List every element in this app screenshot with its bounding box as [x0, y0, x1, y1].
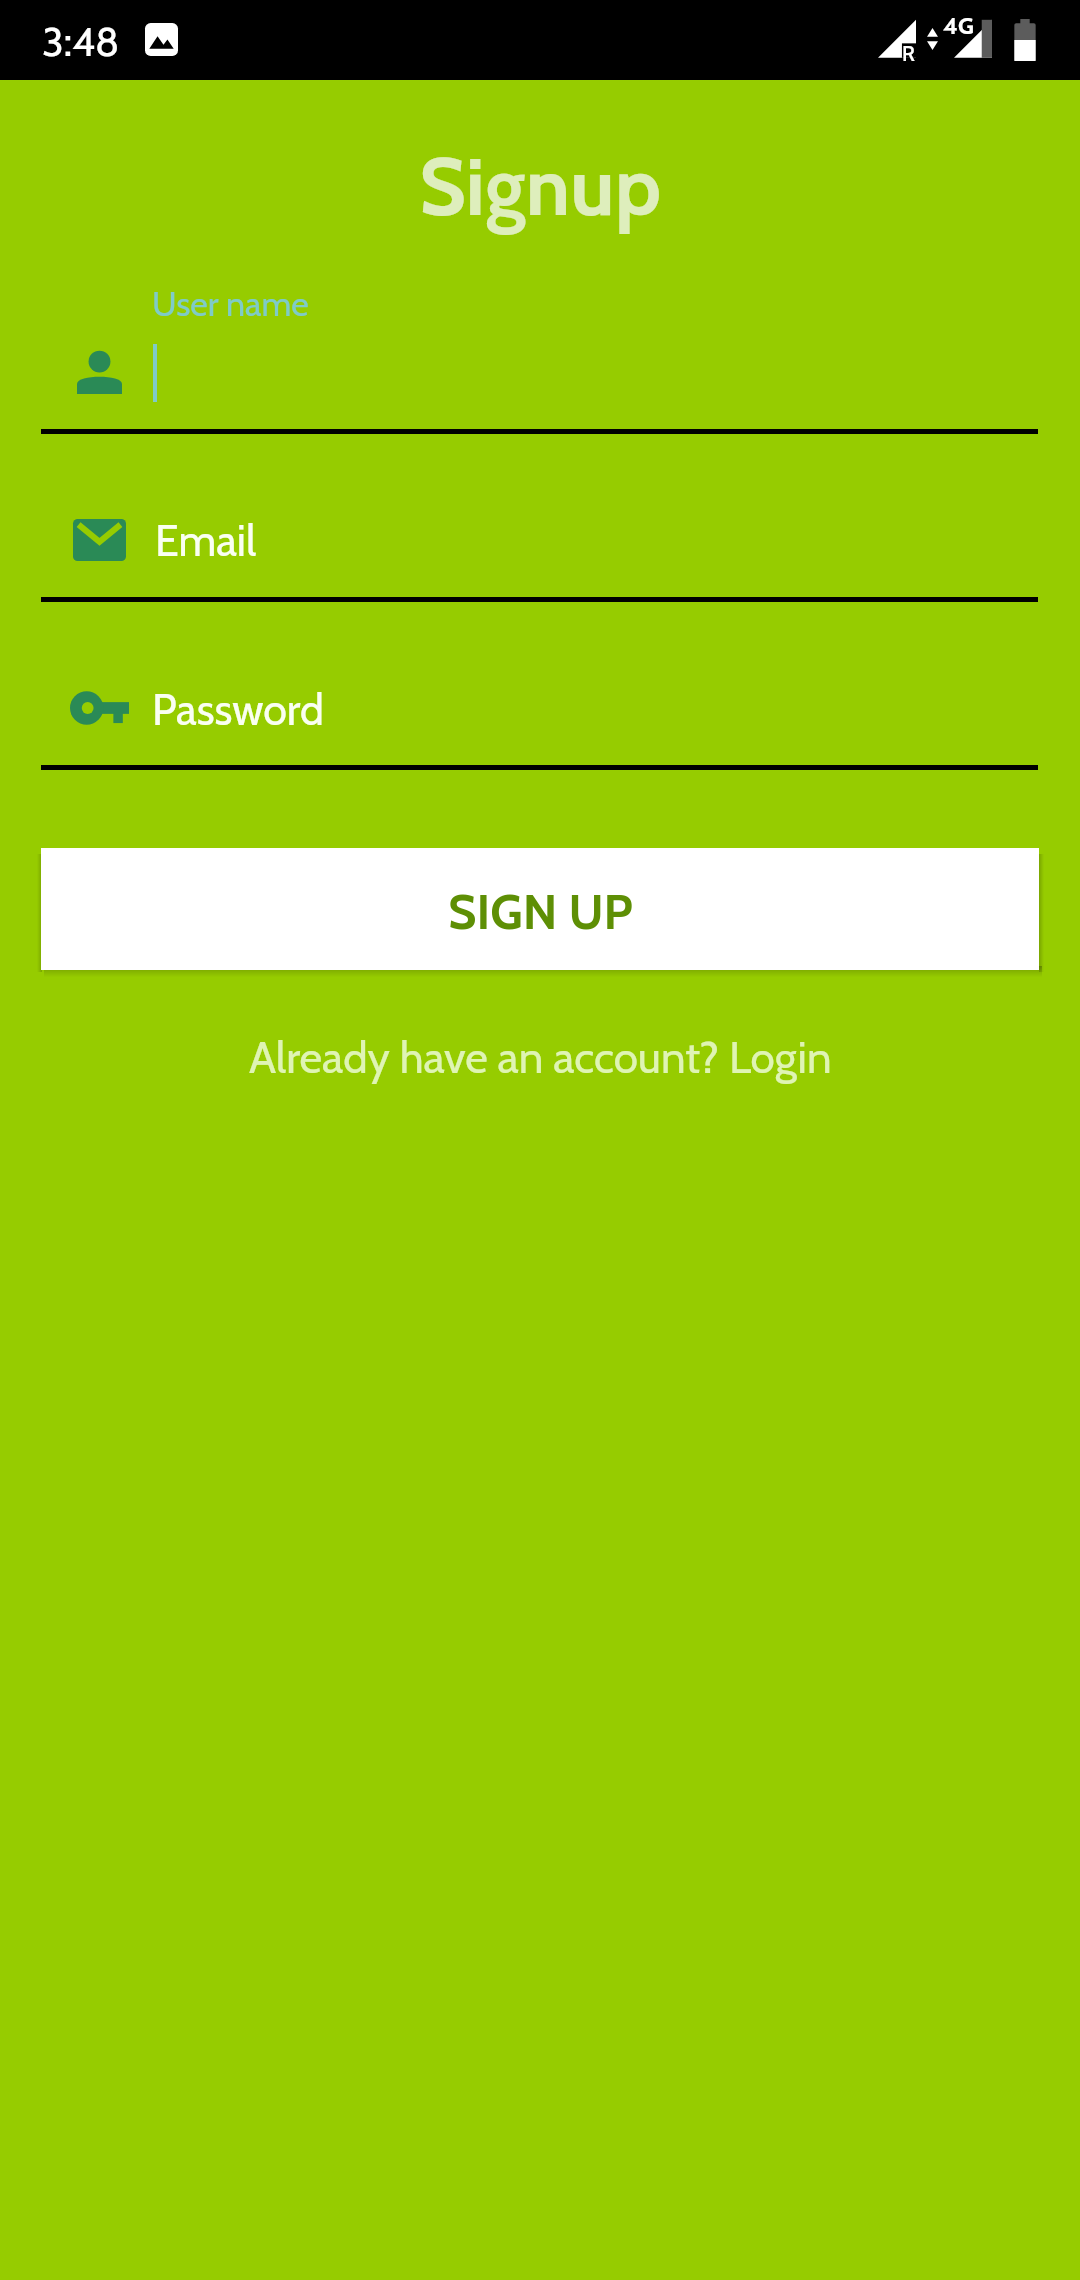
- button[interactable]: User name input field: [41, 270, 1038, 434]
- staticText: R: [902, 41, 915, 67]
- staticText: Already have an account? Login: [249, 1031, 832, 1084]
- button[interactable]: Password input field: [41, 658, 1038, 770]
- staticText: SIGN UP: [448, 882, 633, 942]
- staticText: Email: [155, 515, 257, 567]
- staticText: Signup: [0, 137, 1080, 247]
- staticText: 3:48: [42, 17, 120, 66]
- staticText: User name: [152, 283, 309, 324]
- button[interactable]: Already have an account? Login: [0, 1024, 1080, 1090]
- other: Screenshot notification: [145, 23, 178, 56]
- staticText: 4G: [943, 11, 974, 40]
- button[interactable]: Email input field: [41, 490, 1038, 602]
- staticText: Password: [152, 684, 324, 736]
- button[interactable]: SIGN UP: [41, 848, 1039, 970]
